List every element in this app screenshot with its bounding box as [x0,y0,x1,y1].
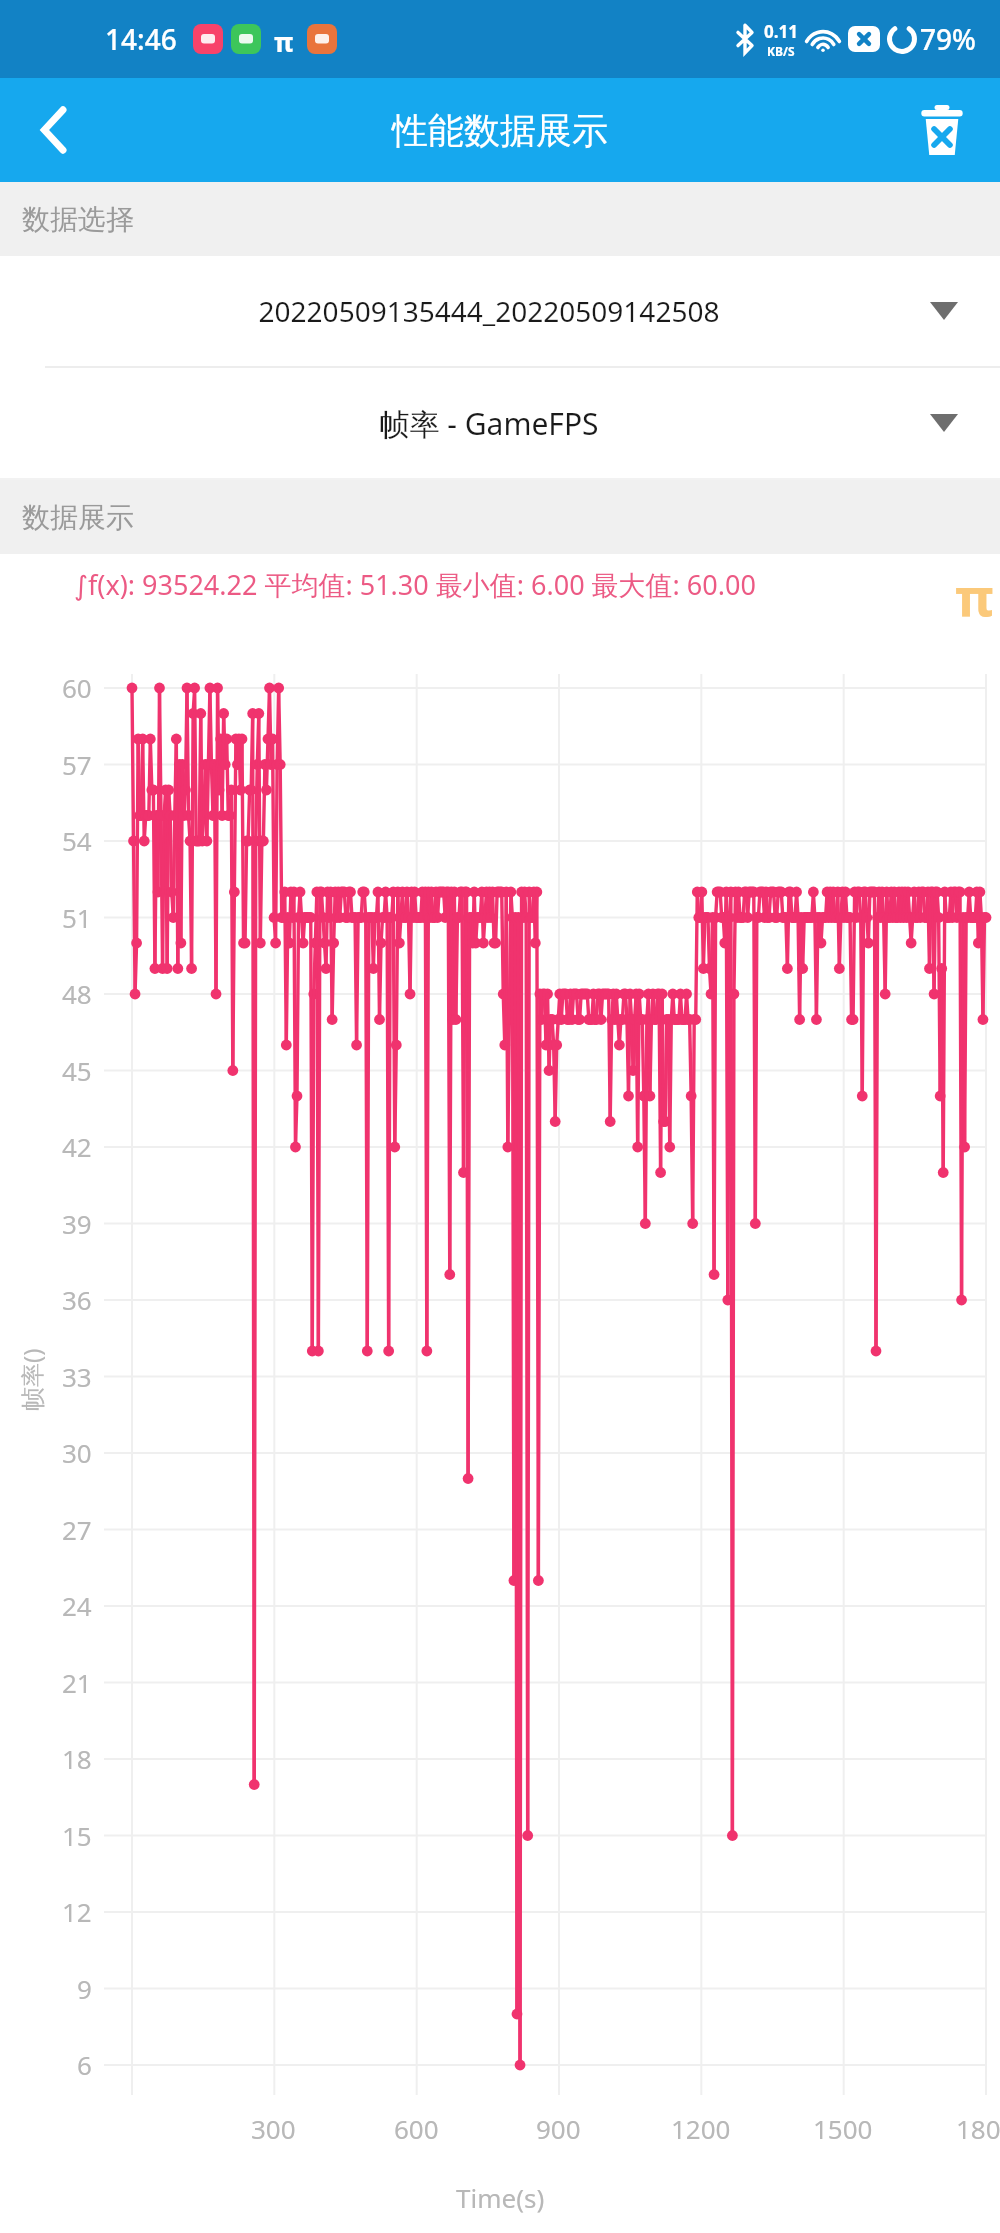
staticText: 54 [62,823,92,858]
button[interactable]: Delete [904,92,980,168]
staticText: 39 [62,1206,92,1241]
staticText: 600 [394,2111,439,2146]
staticText: 45 [62,1053,92,1088]
staticText: 0.11 [764,20,798,43]
staticText: 300 [251,2111,296,2146]
staticText: 21 [62,1665,92,1700]
staticText: 1800 [956,2111,1000,2146]
button[interactable]: 帧率 - GameFPS [0,368,1000,478]
staticText: ∫f(x): 93524.22 平均值: 51.30 最小值: 6.00 最大值… [74,566,756,603]
staticText: π [274,24,294,54]
staticText: 帧率() [15,1348,48,1411]
staticText: 42 [62,1129,92,1164]
staticText: 33 [62,1359,92,1394]
staticText: 30 [62,1435,92,1470]
staticText: 帧率 - GameFPS [48,403,930,444]
staticText: 24 [62,1588,92,1623]
button[interactable]: Back [16,92,92,168]
button[interactable]: 20220509135444_20220509142508 [0,256,1000,366]
staticText: 36 [62,1282,92,1317]
staticText: 数据选择 [22,202,134,237]
staticText: π [955,560,994,631]
staticText: 57 [62,747,92,782]
staticText: 6 [77,2047,92,2082]
staticText: 12 [62,1894,92,1929]
staticText: 数据展示 [22,500,134,535]
staticText: 15 [62,1818,92,1853]
staticText: 20220509135444_20220509142508 [48,292,930,330]
staticText: Time(s) [456,2180,545,2215]
staticText: KB/S [767,43,795,59]
staticText: 27 [62,1512,92,1547]
staticText: 性能数据展示 [392,108,608,153]
staticText: 900 [536,2111,581,2146]
staticText: 51 [62,900,92,935]
staticText: 18 [62,1741,92,1776]
staticText: 79% [920,20,976,58]
staticText: 48 [62,976,92,1011]
staticText: 60 [62,670,92,705]
staticText: 14:46 [105,20,177,58]
staticText: 1500 [813,2111,873,2146]
staticText: 1200 [671,2111,731,2146]
staticText: 9 [77,1971,92,2006]
